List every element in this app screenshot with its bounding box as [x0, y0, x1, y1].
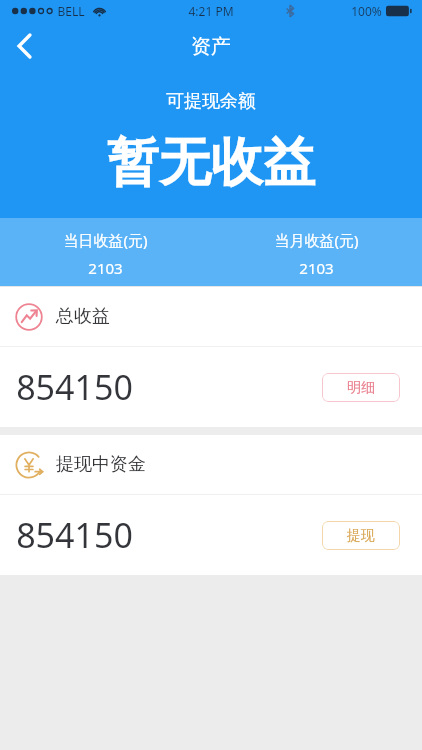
- staticText: 当日收益(元): [63, 230, 148, 250]
- staticText: 提现中资金: [56, 453, 146, 476]
- staticText: BELL: [57, 3, 85, 19]
- staticText: 明细: [347, 379, 375, 397]
- staticText: 提现: [347, 527, 375, 545]
- staticText: 暂无收益: [107, 130, 315, 196]
- button[interactable]: 提现中资金: [0, 435, 422, 494]
- button[interactable]: 总收益: [0, 287, 422, 346]
- staticText: 可提现余额: [166, 90, 256, 113]
- staticText: 2103: [88, 258, 123, 278]
- staticText: 854150: [16, 512, 133, 558]
- button[interactable]: Back: [0, 22, 48, 70]
- button[interactable]: 明细: [322, 373, 400, 402]
- staticText: 100%: [351, 3, 382, 19]
- staticText: 总收益: [56, 305, 110, 328]
- button[interactable]: 提现: [322, 521, 400, 550]
- staticText: 854150: [16, 364, 133, 410]
- staticText: 当月收益(元): [274, 230, 359, 250]
- staticText: 4:21 PM: [188, 3, 234, 19]
- staticText: 2103: [299, 258, 334, 278]
- staticText: 资产: [191, 34, 231, 59]
